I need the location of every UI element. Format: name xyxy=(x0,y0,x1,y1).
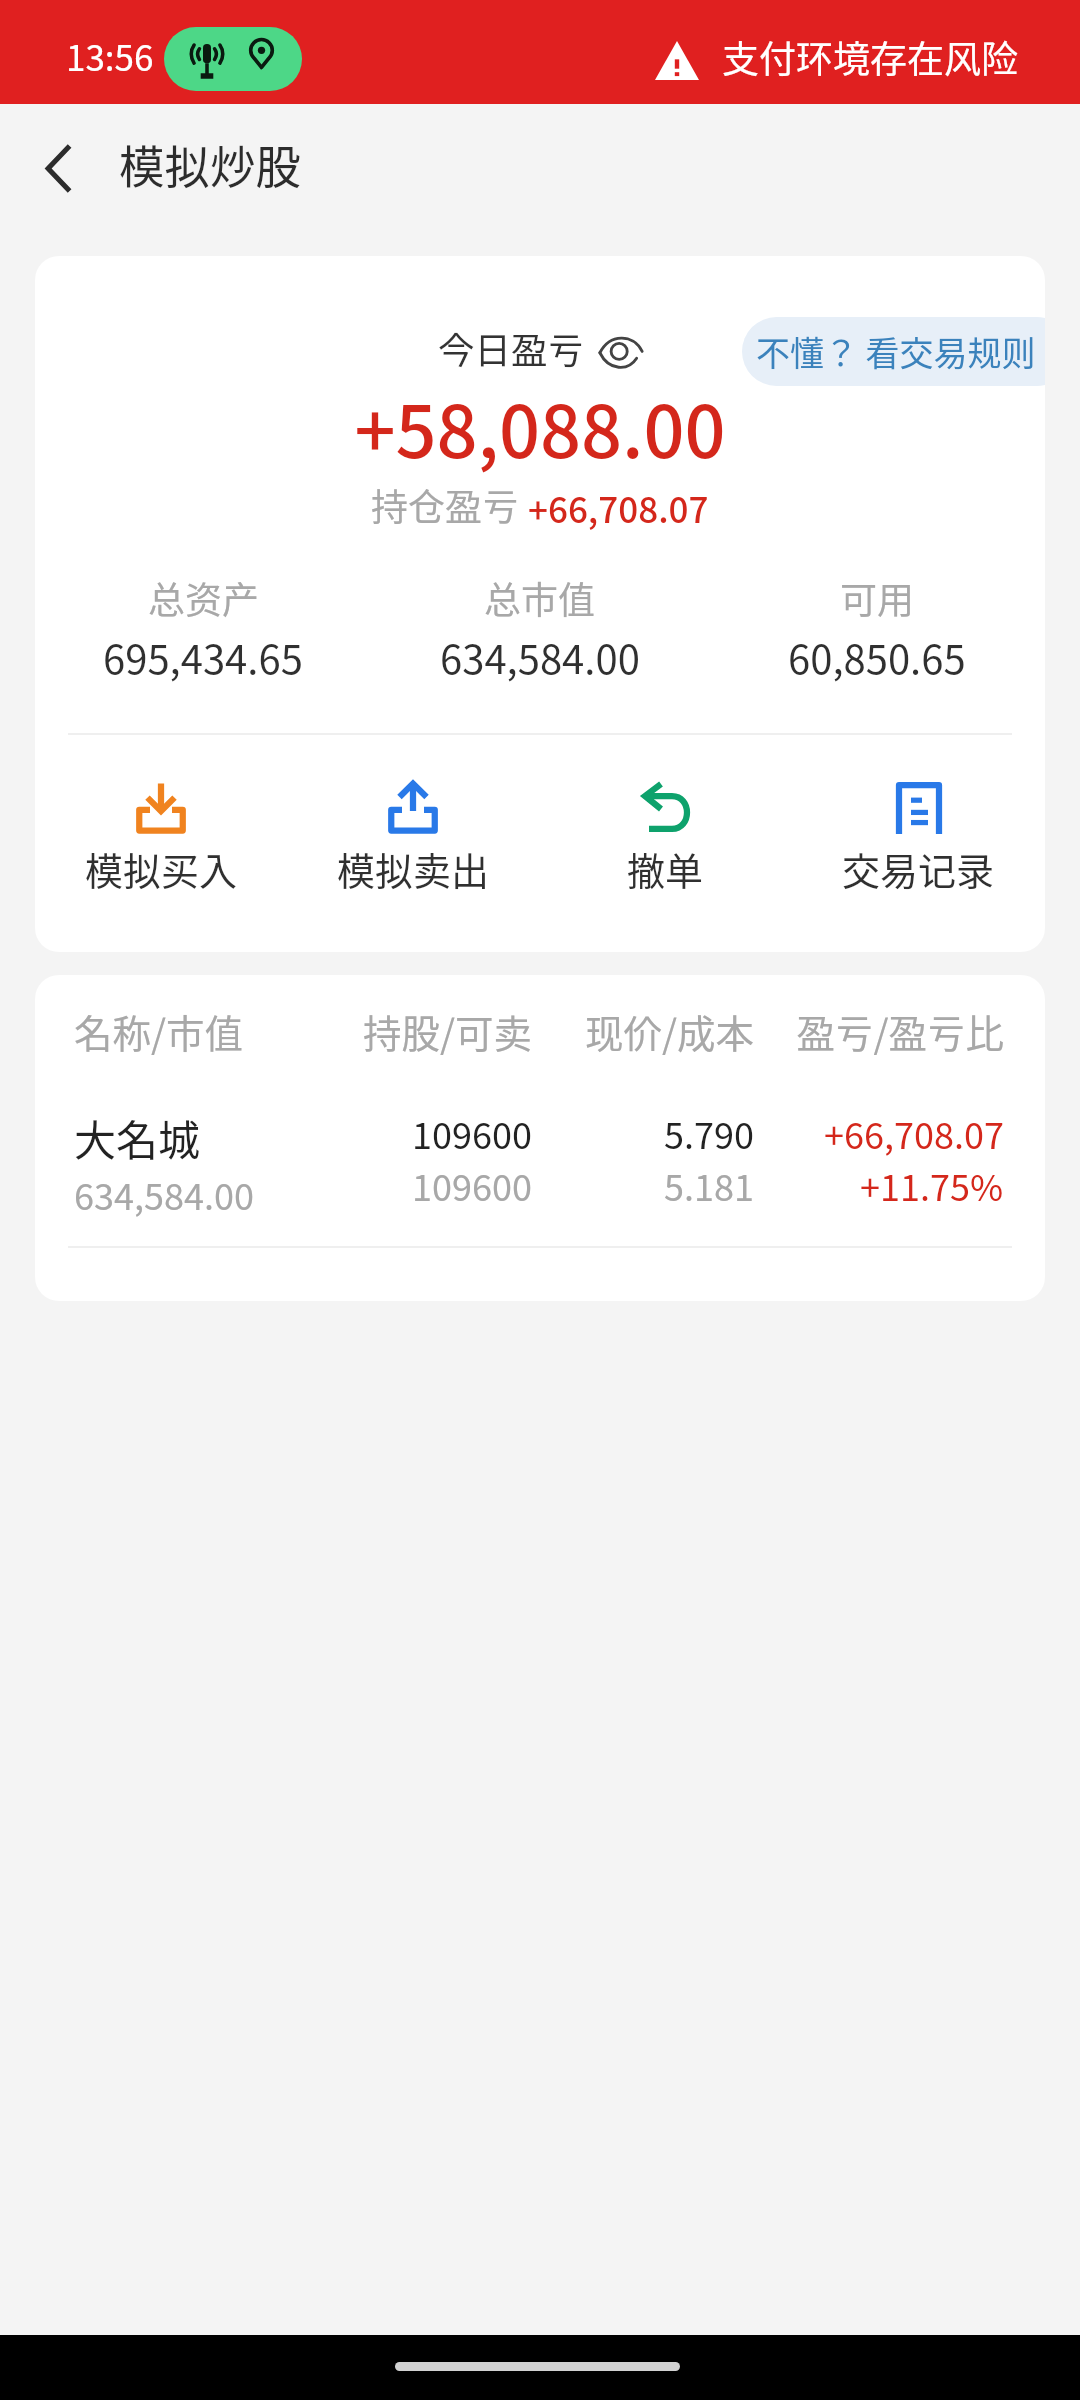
staticText: 695,434.65 xyxy=(103,628,303,686)
staticText: 109600 xyxy=(412,1107,532,1159)
button[interactable]: 不懂？ 看交易规则 xyxy=(742,317,1045,386)
staticText: 现价/成本 xyxy=(532,1003,754,1059)
staticText: 5.181 xyxy=(664,1159,754,1211)
staticText: 大名城 xyxy=(74,1107,201,1168)
staticText: 634,584.00 xyxy=(74,1168,254,1220)
staticText: 持股/可卖 xyxy=(324,1003,532,1059)
staticText: 模拟炒股 xyxy=(119,131,302,197)
staticText: 634,584.00 xyxy=(440,628,640,686)
staticText: 总市值 xyxy=(484,571,595,625)
button[interactable]: 模拟卖出 xyxy=(287,782,539,896)
staticText: 名称/市值 xyxy=(74,1003,324,1059)
staticText: 交易记录 xyxy=(842,841,995,896)
staticText: 13:56 xyxy=(66,30,154,81)
staticText: +66,708.07 xyxy=(528,482,709,533)
staticText: +58,088.00 xyxy=(35,374,1045,478)
button[interactable]: Back xyxy=(0,116,118,220)
staticText: 109600 xyxy=(412,1159,532,1211)
staticText: 模拟买入 xyxy=(85,841,238,896)
staticText: 不懂？ 看交易规则 xyxy=(756,327,1036,376)
staticText: 60,850.65 xyxy=(788,628,966,686)
staticText: 支付环境存在风险 xyxy=(722,30,1018,84)
staticText: 撤单 xyxy=(627,841,704,896)
button[interactable]: 大名城 xyxy=(35,1107,1045,1220)
staticText: 总资产 xyxy=(148,571,259,625)
staticText: 盈亏/盈亏比 xyxy=(754,1003,1004,1059)
staticText: 模拟卖出 xyxy=(337,841,490,896)
staticText: 5.790 xyxy=(664,1107,754,1159)
staticText: +66,708.07 xyxy=(824,1107,1004,1159)
staticText: 可用 xyxy=(840,571,914,625)
staticText: 持仓盈亏 xyxy=(371,478,519,532)
button[interactable]: 交易记录 xyxy=(792,782,1045,896)
button[interactable]: 模拟买入 xyxy=(35,782,287,896)
button[interactable]: 撤单 xyxy=(539,782,792,896)
staticText: +11.75% xyxy=(860,1159,1004,1211)
staticText: 今日盈亏 xyxy=(438,322,584,375)
